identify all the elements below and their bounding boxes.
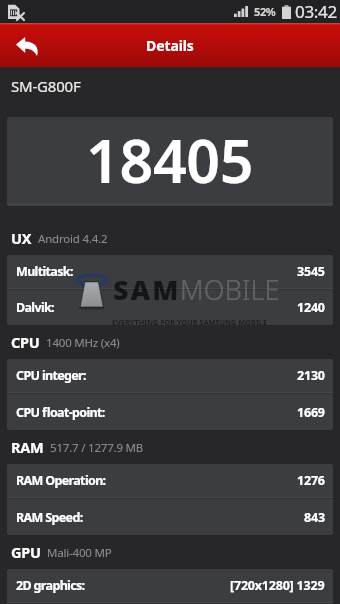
button[interactable]: 2D graphics: <box>7 569 333 602</box>
staticText: 3545 <box>297 263 325 280</box>
button[interactable]: CPU float-point: <box>7 394 333 430</box>
staticText: Dalvik: <box>16 299 54 316</box>
staticText: RAM <box>11 437 44 457</box>
button[interactable]: CPU integer: <box>7 359 333 392</box>
staticText: EVERYTHING FOR YOUR SAMSUNG MOBILE <box>112 317 268 327</box>
button[interactable]: Dalvik: <box>7 290 333 325</box>
staticText: SAM <box>113 271 181 308</box>
staticText: 52% <box>254 4 276 19</box>
button[interactable]: RAM Speed: <box>7 499 333 535</box>
staticText: SM-G800F <box>11 76 81 96</box>
staticText: 2D graphics: <box>16 577 85 594</box>
staticText: MOBILE <box>180 271 280 308</box>
staticText: [720x1280] 1329 <box>230 577 325 594</box>
staticText: CPU <box>11 332 40 352</box>
button[interactable]: Back <box>0 23 52 67</box>
staticText: 18405 <box>86 120 254 200</box>
button[interactable]: Multitask: <box>7 255 333 288</box>
staticText: Android 4.4.2 <box>38 231 108 247</box>
staticText: Details <box>146 36 194 55</box>
staticText: Mali-400 MP <box>47 545 112 561</box>
staticText: 2130 <box>297 367 325 384</box>
staticText: 843 <box>304 509 325 526</box>
staticText: CPU integer: <box>16 367 86 384</box>
staticText: 1669 <box>297 404 325 421</box>
staticText: 1276 <box>297 472 325 489</box>
staticText: 1240 <box>297 299 325 316</box>
staticText: GPU <box>11 542 41 562</box>
button[interactable]: RAM Operation: <box>7 464 333 497</box>
staticText: 1400 MHz (x4) <box>46 335 120 351</box>
staticText: RAM Speed: <box>16 509 83 526</box>
staticText: Multitask: <box>16 263 73 280</box>
staticText: RAM Operation: <box>16 472 106 489</box>
staticText: UX <box>11 228 32 248</box>
staticText: 03:42 <box>295 0 337 23</box>
staticText: CPU float-point: <box>16 404 105 421</box>
staticText: 517.7 / 1277.9 MB <box>50 440 144 456</box>
